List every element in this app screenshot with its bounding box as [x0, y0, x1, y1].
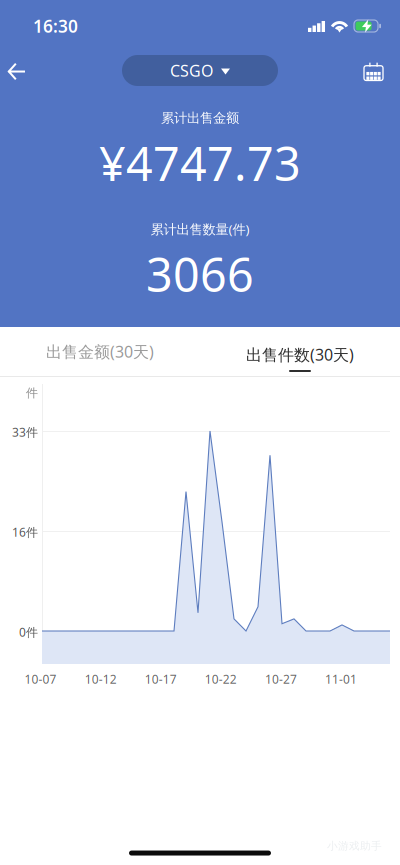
staticText: 出售金额(30天) [46, 341, 154, 362]
button[interactable]: Calendar [353, 51, 394, 91]
button[interactable]: Back [0, 52, 36, 91]
staticText: 0件 [19, 624, 38, 640]
staticText: 33件 [12, 424, 38, 440]
staticText: ¥4747.73 [99, 132, 301, 194]
button[interactable]: CSGO [122, 55, 278, 86]
staticText: CSGO [170, 60, 213, 81]
staticText: 出售件数(30天) [246, 344, 354, 365]
staticText: 累计出售数量(件) [150, 220, 249, 238]
button[interactable]: 出售金额(30天) [0, 327, 200, 376]
staticText: 累计出售金额 [161, 110, 239, 126]
staticText: 件 [26, 386, 38, 400]
staticText: 16:30 [33, 14, 78, 37]
staticText: 10-22 [205, 671, 237, 687]
button[interactable]: 出售件数(30天) [200, 327, 400, 376]
staticText: 10-17 [145, 671, 177, 687]
staticText: 16件 [12, 524, 38, 540]
staticText: 10-27 [265, 671, 297, 687]
staticText: 10-07 [25, 671, 57, 687]
staticText: 3066 [146, 243, 254, 305]
staticText: 11-01 [325, 671, 357, 687]
staticText: 10-12 [85, 671, 117, 687]
staticText: 小游戏助手 [327, 839, 382, 852]
